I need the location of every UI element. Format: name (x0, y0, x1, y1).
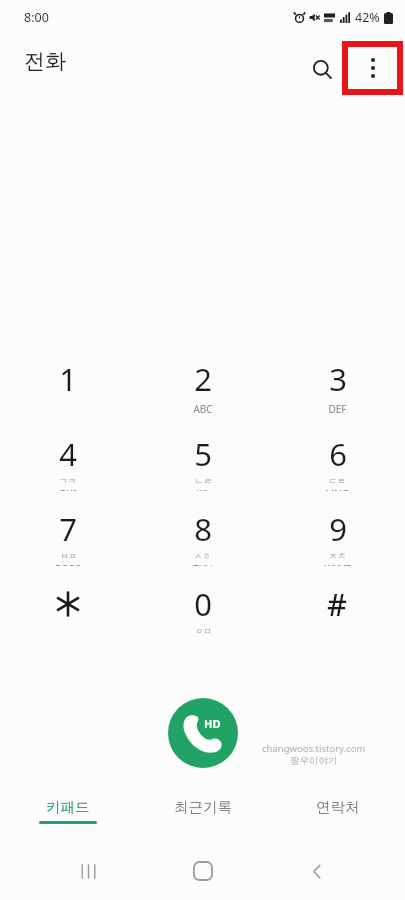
staticText: ABC (193, 402, 213, 416)
button[interactable]: 3 (270, 358, 405, 416)
staticText: changwoos.tistory.com (262, 742, 366, 755)
button[interactable]: Search (300, 47, 344, 91)
button[interactable]: # (270, 583, 405, 641)
staticText: 8:00 (24, 9, 49, 26)
button[interactable]: 최근기록 (135, 793, 270, 833)
staticText: 연락처 (316, 798, 360, 816)
button[interactable]: 9 (270, 508, 405, 566)
button[interactable]: 8 (135, 508, 270, 566)
button[interactable]: Back (291, 845, 343, 897)
button[interactable]: Call (168, 698, 238, 768)
button[interactable]: 키패드 (0, 793, 135, 833)
staticText: PQRS (55, 562, 81, 566)
staticText: 키패드 (46, 798, 90, 816)
button[interactable]: 1 (0, 358, 135, 416)
staticText: ㅇㅁ (195, 626, 212, 637)
staticText: 42% (355, 9, 380, 26)
staticText: 1 (59, 358, 77, 400)
staticText: ㄱㅋ (59, 476, 76, 487)
staticText: 5 (194, 433, 212, 475)
staticText: 0 (194, 583, 212, 625)
staticText: 3 (329, 358, 347, 400)
staticText: 4 (59, 433, 77, 475)
staticText: TUV (193, 562, 212, 566)
button[interactable] (0, 583, 135, 641)
staticText: ㅅㅎ (194, 551, 211, 562)
button[interactable]: 연락처 (270, 793, 405, 833)
button[interactable]: 4 (0, 433, 135, 491)
staticText: MNO (325, 487, 350, 491)
button[interactable]: More options (345, 44, 400, 92)
staticText: ㅈㅊ (329, 551, 346, 562)
staticText: 전화 (24, 48, 66, 74)
staticText: 짱우이야기 (290, 755, 338, 767)
button[interactable]: 6 (270, 433, 405, 491)
staticText: DEF (328, 402, 347, 416)
staticText: HD (204, 716, 221, 731)
button[interactable]: Recents (62, 845, 114, 897)
button[interactable]: Home (177, 845, 229, 897)
staticText: ㅂㅍ (60, 551, 77, 562)
staticText: ㄴㄹ (195, 476, 212, 487)
staticText: 7 (59, 508, 77, 550)
staticText: # (327, 583, 348, 625)
staticText: 최근기록 (174, 798, 232, 816)
staticText: JKL (196, 487, 211, 491)
staticText: 8 (194, 508, 212, 550)
staticText: ㄷㅌ (329, 476, 346, 487)
staticText: WXYZ (324, 562, 351, 566)
button[interactable]: 7 (0, 508, 135, 566)
button[interactable]: 2 (135, 358, 270, 416)
staticText: GHI (58, 487, 77, 491)
staticText: 6 (329, 433, 347, 475)
staticText: 2 (194, 358, 212, 400)
staticText: 9 (329, 508, 347, 550)
button[interactable]: 5 (135, 433, 270, 491)
button[interactable]: 0 (135, 583, 270, 641)
